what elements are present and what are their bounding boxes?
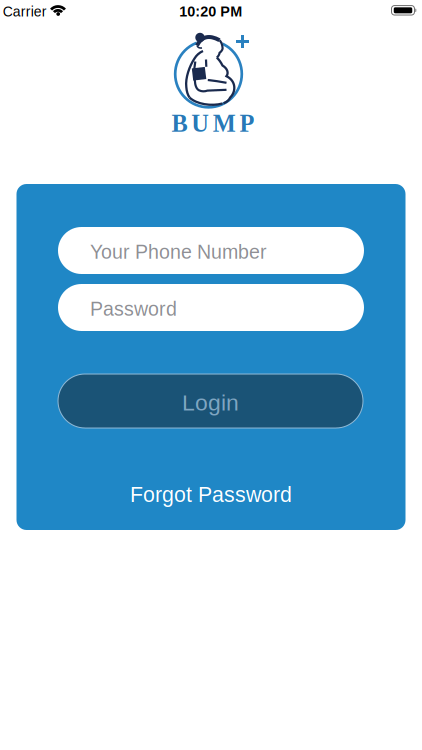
staticText: 10:20 PM bbox=[179, 3, 242, 19]
button[interactable]: Your Phone Number bbox=[58, 227, 364, 274]
staticText: Forgot Password bbox=[130, 483, 292, 506]
staticText: BUMP bbox=[172, 110, 254, 137]
button[interactable]: Forgot Password bbox=[130, 483, 292, 506]
button[interactable]: Password bbox=[58, 284, 364, 331]
staticText: Login bbox=[182, 390, 239, 415]
staticText: Password bbox=[90, 298, 177, 320]
button[interactable]: Login bbox=[58, 374, 363, 428]
staticText: Carrier bbox=[3, 4, 47, 19]
staticText: Your Phone Number bbox=[90, 241, 267, 263]
